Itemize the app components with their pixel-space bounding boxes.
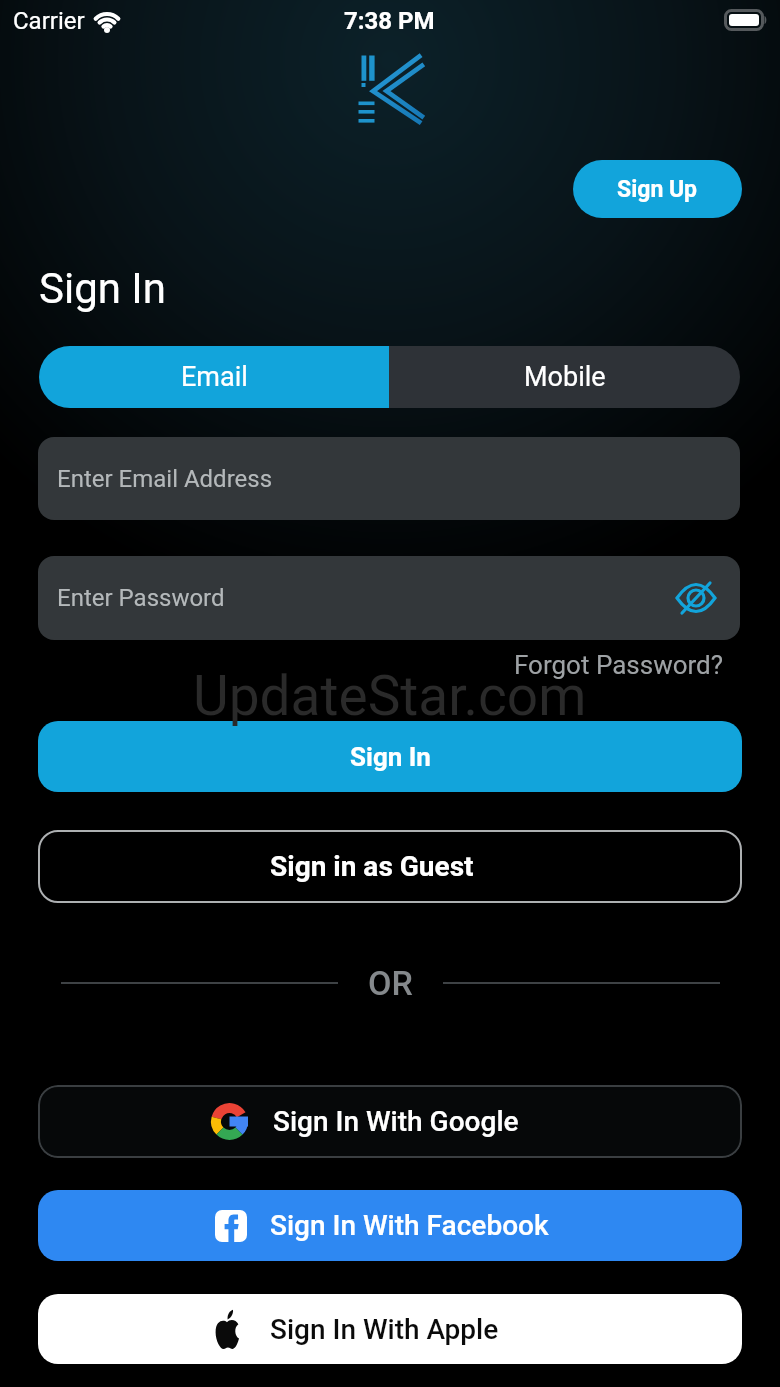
button[interactable]: Sign in as Guest: [38, 830, 742, 903]
staticText: Enter Email Address: [57, 465, 273, 493]
button[interactable]: Enter Password: [38, 556, 740, 640]
staticText: 7:38 PM: [344, 7, 435, 35]
staticText: Sign in as Guest: [270, 850, 474, 883]
button[interactable]: Sign In With Facebook: [38, 1190, 742, 1261]
staticText: Email: [181, 361, 248, 393]
staticText: UpdateStar.com: [193, 664, 587, 728]
button[interactable]: Forgot Password?: [514, 650, 724, 680]
staticText: Sign In With Facebook: [270, 1209, 549, 1242]
button[interactable]: Sign Up: [573, 160, 742, 218]
staticText: Sign In With Apple: [270, 1313, 499, 1346]
staticText: Carrier: [13, 7, 85, 35]
staticText: Sign In: [350, 742, 431, 772]
staticText: Sign In With Google: [273, 1105, 519, 1138]
staticText: Sign In: [39, 264, 166, 313]
button[interactable]: Sign In: [38, 721, 742, 792]
button[interactable]: Email: [39, 346, 389, 408]
staticText: Mobile: [524, 361, 606, 393]
staticText: Enter Password: [57, 584, 225, 612]
staticText: OR: [368, 963, 413, 1003]
button[interactable]: Enter Email Address: [38, 437, 740, 520]
button[interactable]: Sign In With Google: [38, 1085, 742, 1158]
button[interactable]: Sign In With Apple: [38, 1294, 742, 1364]
staticText: Sign Up: [617, 176, 698, 203]
button[interactable]: Mobile: [389, 346, 740, 408]
